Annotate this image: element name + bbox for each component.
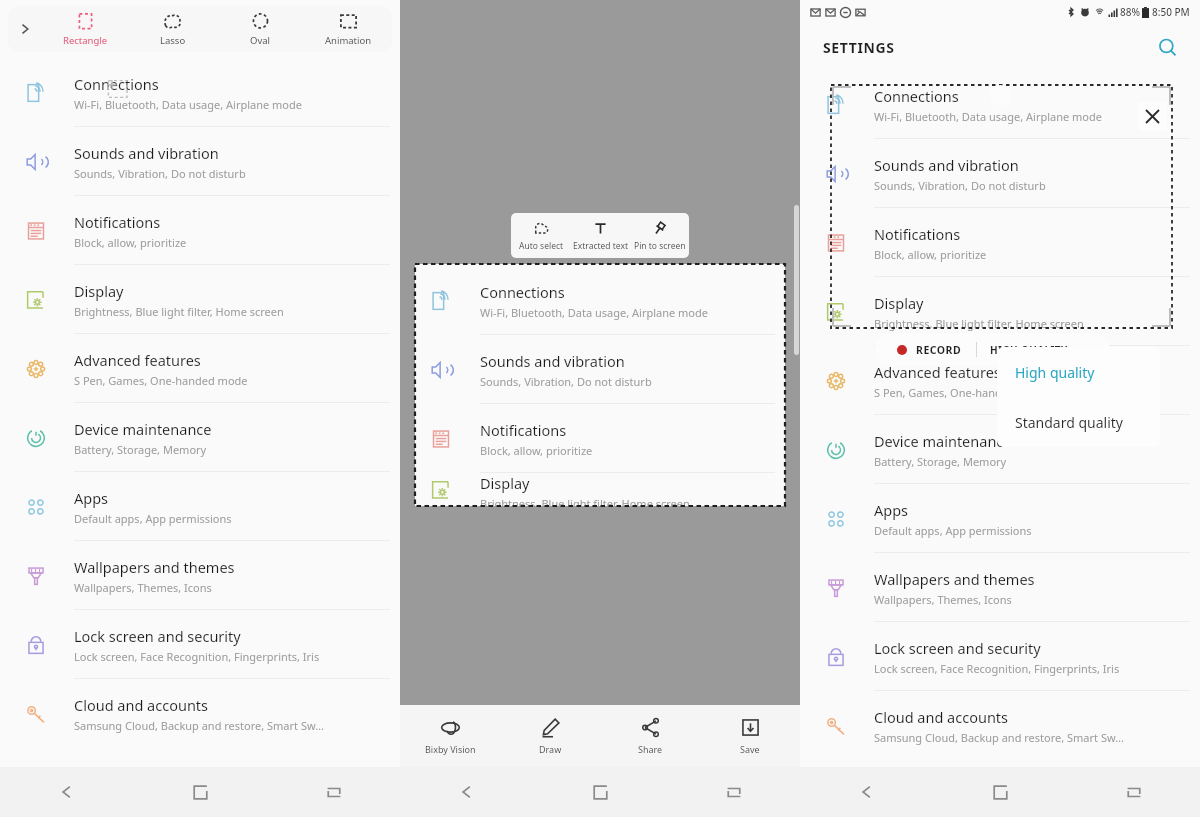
button[interactable]: Sounds and vibration [415,335,785,404]
staticText: Battery, Storage, Memory [74,442,207,457]
button[interactable]: Oval [216,6,304,52]
staticText: Wallpapers, Themes, Icons [874,592,1012,607]
staticText: Cloud and accounts [874,707,1009,727]
button[interactable]: Display [415,473,785,506]
staticText: SETTINGS [823,38,895,57]
button[interactable]: Extracted text [571,213,630,258]
staticText: Sounds and vibration [480,351,625,371]
button[interactable]: Home [534,767,667,817]
button[interactable]: Connections [0,58,400,127]
staticText: Lock screen, Face Recognition, Fingerpri… [74,649,320,664]
staticText: Connections [874,86,959,106]
staticText: Share [638,743,663,755]
button[interactable]: Pin to screen [630,213,689,258]
staticText: Display [874,293,924,313]
staticText: Wallpapers and themes [74,557,235,577]
button[interactable]: RECORD [875,333,1110,366]
button[interactable]: Lock screen and security [800,622,1200,691]
button[interactable]: Auto select [511,213,571,258]
staticText: Brightness, Blue light filter, Home scre… [74,304,284,319]
button[interactable]: Back [0,767,134,817]
button[interactable]: Cloud and accounts [800,691,1200,760]
button[interactable]: Wallpapers and themes [0,541,400,610]
staticText: Sounds, Vibration, Do not disturb [74,166,246,181]
staticText: HIGH QUALITY [990,343,1068,357]
staticText: Wi-Fi, Bluetooth, Data usage, Airplane m… [480,305,708,320]
staticText: Display [480,473,530,493]
staticText: RECORD [916,343,962,357]
staticText: Default apps, App permissions [74,511,232,526]
staticText: Bixby Vision [425,743,476,755]
button[interactable]: Display [800,277,1200,346]
button[interactable]: Apps [0,472,400,541]
staticText: Advanced features [874,362,1001,382]
button[interactable]: Recents [267,767,400,817]
button[interactable]: Rotate selection [990,85,1011,106]
staticText: Default apps, App permissions [874,523,1032,538]
staticText: S Pen, Games, One-handed mode [74,373,248,388]
button[interactable]: Device maintenance [800,415,1200,484]
staticText: Lock screen and security [874,638,1041,658]
staticText: 88% [1120,5,1140,19]
button[interactable]: Home [134,767,267,817]
button[interactable]: Draw [500,705,600,767]
button[interactable]: Recents [1067,767,1200,817]
button[interactable]: Rectangle [42,6,129,52]
button[interactable]: Lock screen and security [0,610,400,679]
staticText: Wi-Fi, Bluetooth, Data usage, Airplane m… [74,97,302,112]
button[interactable]: Advanced features [800,346,1200,415]
staticText: Wallpapers, Themes, Icons [74,580,212,595]
button[interactable]: Advanced features [0,334,400,403]
button[interactable]: Bixby Vision [400,705,500,767]
button[interactable]: Back [400,767,534,817]
staticText: Lock screen, Face Recognition, Fingerpri… [874,661,1120,676]
button[interactable]: Animation [304,6,392,52]
staticText: Sounds and vibration [74,143,219,163]
button[interactable]: Notifications [415,404,785,473]
staticText: Rectangle [63,34,108,47]
button[interactable]: Cloud and accounts [0,679,400,748]
button[interactable]: Expand [8,6,42,52]
button[interactable]: Connections [415,266,785,335]
button[interactable]: Close [1138,102,1167,131]
button[interactable]: Sounds and vibration [0,127,400,196]
button[interactable]: Wallpapers and themes [800,553,1200,622]
staticText: High quality [1015,363,1095,382]
staticText: Draw [539,743,562,755]
button[interactable]: Standard quality [997,397,1160,447]
button[interactable]: Notifications [800,208,1200,277]
button[interactable]: High quality [997,347,1160,397]
staticText: Notifications [74,212,161,232]
staticText: Oval [250,34,271,47]
staticText: Apps [874,500,909,520]
staticText: Apps [74,488,109,508]
button[interactable]: Search [1152,32,1182,62]
button[interactable]: Apps [800,484,1200,553]
button[interactable]: Notifications [0,196,400,265]
staticText: Sounds and vibration [874,155,1019,175]
staticText: Lasso [160,34,186,47]
button[interactable]: Connections [800,70,1200,139]
button[interactable]: Device maintenance [0,403,400,472]
button[interactable]: Recents [667,767,800,817]
button[interactable]: Display [0,265,400,334]
button[interactable]: Lasso [129,6,216,52]
staticText: Sounds, Vibration, Do not disturb [480,374,652,389]
staticText: Samsung Cloud, Backup and restore, Smart… [874,730,1124,745]
button[interactable]: Share [600,705,700,767]
button[interactable]: Save [700,705,800,767]
staticText: Notifications [874,224,961,244]
staticText: Lock screen and security [74,626,241,646]
staticText: Device maintenance [874,431,1012,451]
staticText: Save [740,743,760,755]
staticText: Standard quality [1015,413,1123,432]
staticText: Battery, Storage, Memory [874,454,1007,469]
button[interactable]: Back [800,767,934,817]
staticText: Display [74,281,124,301]
staticText: Notifications [480,420,567,440]
staticText: Extracted text [573,240,629,252]
staticText: Wallpapers and themes [874,569,1035,589]
button[interactable]: Home [934,767,1067,817]
button[interactable]: Sounds and vibration [800,139,1200,208]
staticText: Sounds, Vibration, Do not disturb [874,178,1046,193]
